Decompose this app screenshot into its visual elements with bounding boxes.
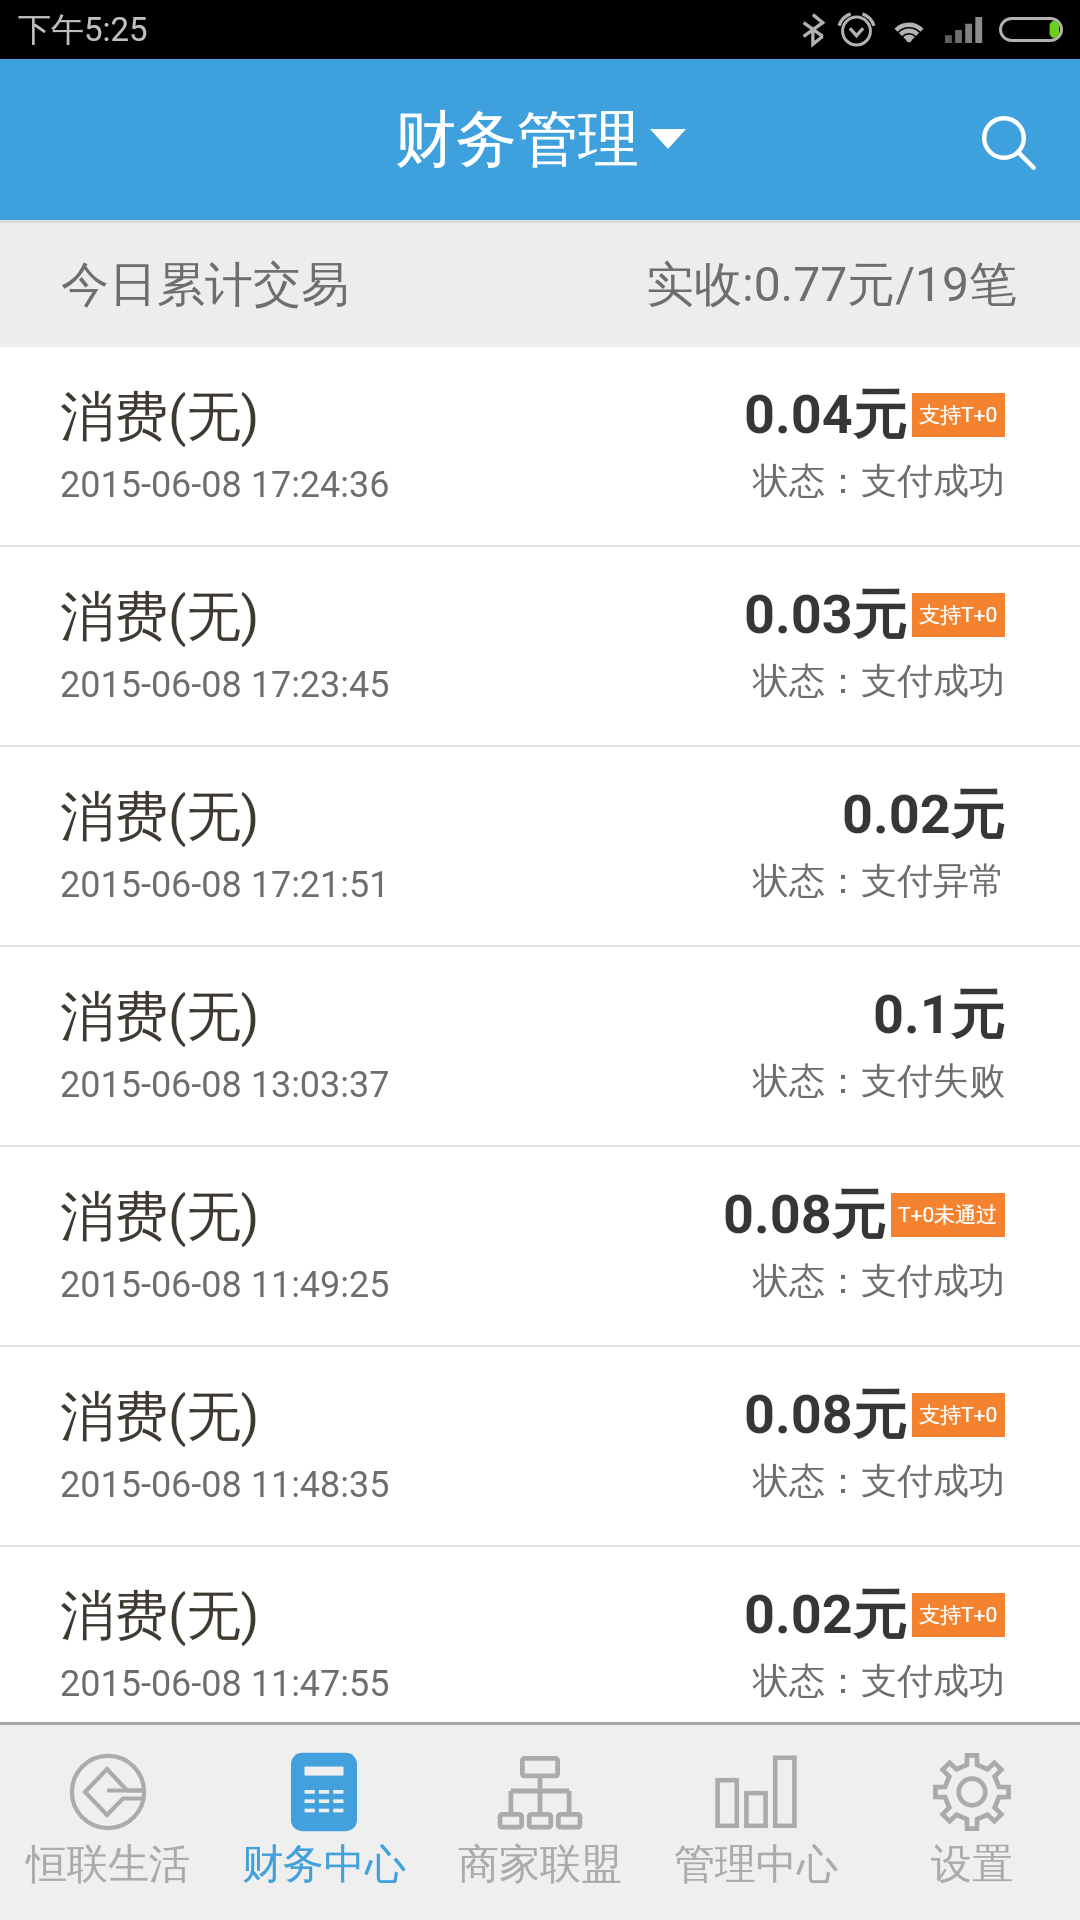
staticText: 0.02元 [842, 781, 1005, 849]
staticText: 财务中心 [242, 1839, 406, 1891]
button[interactable]: 消费(无) [0, 1547, 1080, 1722]
staticText: 消费(无) [60, 1183, 260, 1251]
staticText: 0.03元 [744, 581, 907, 649]
staticText: 消费(无) [60, 383, 260, 451]
button[interactable]: 财务管理 [395, 101, 686, 178]
button[interactable]: 消费(无) [0, 947, 1080, 1145]
button[interactable]: 消费(无) [0, 547, 1080, 745]
staticText: 0.08元 [723, 1181, 886, 1249]
staticText: 今日累计交易 [61, 255, 349, 315]
button[interactable]: 恒联生活 [0, 1725, 216, 1920]
staticText: 0.08元 [744, 1381, 907, 1449]
staticText: 消费(无) [60, 1383, 260, 1451]
button[interactable]: 消费(无) [0, 1147, 1080, 1345]
staticText: 2015-06-08 13:03:37 [60, 1064, 390, 1106]
staticText: 状态：支付失败 [753, 1058, 1005, 1103]
staticText: 2015-06-08 11:47:55 [60, 1663, 390, 1705]
staticText: 2015-06-08 17:24:36 [60, 464, 390, 506]
staticText: 消费(无) [60, 1582, 260, 1650]
staticText: 2015-06-08 17:23:45 [60, 664, 390, 706]
staticText: 支持T+0 [919, 402, 998, 428]
staticText: 状态：支付成功 [753, 1458, 1005, 1503]
staticText: 下午5:25 [18, 9, 148, 51]
staticText: 2015-06-08 17:21:51 [60, 864, 390, 906]
staticText: 商家联盟 [458, 1839, 622, 1891]
button[interactable]: Search [950, 70, 1080, 210]
staticText: 0.02元 [744, 1581, 907, 1649]
staticText: 状态：支付异常 [753, 858, 1005, 903]
button[interactable]: 管理中心 [648, 1725, 864, 1920]
staticText: 财务管理 [395, 101, 639, 178]
staticText: 消费(无) [60, 983, 260, 1051]
button[interactable]: 消费(无) [0, 747, 1080, 945]
staticText: 2015-06-08 11:48:35 [60, 1464, 390, 1506]
staticText: 管理中心 [674, 1839, 838, 1891]
staticText: 实收:0.77元/19笔 [646, 255, 1017, 315]
button[interactable]: 消费(无) [0, 1347, 1080, 1545]
staticText: 状态：支付成功 [753, 658, 1005, 703]
button[interactable]: 财务中心 [216, 1725, 432, 1920]
staticText: 恒联生活 [26, 1839, 190, 1891]
staticText: 状态：支付成功 [753, 1658, 1005, 1703]
staticText: 状态：支付成功 [753, 458, 1005, 503]
staticText: 2015-06-08 11:49:25 [60, 1264, 390, 1306]
staticText: 支持T+0 [919, 1602, 998, 1628]
staticText: 消费(无) [60, 583, 260, 651]
staticText: 设置 [931, 1839, 1013, 1891]
button[interactable]: 消费(无) [0, 347, 1080, 545]
button[interactable]: 设置 [864, 1725, 1080, 1920]
staticText: 支持T+0 [919, 1402, 998, 1428]
staticText: 支持T+0 [919, 602, 998, 628]
staticText: 0.1元 [873, 981, 1005, 1049]
staticText: 状态：支付成功 [753, 1258, 1005, 1303]
staticText: T+0未通过 [898, 1202, 998, 1228]
staticText: 0.04元 [744, 381, 907, 449]
button[interactable]: 商家联盟 [432, 1725, 648, 1920]
staticText: 消费(无) [60, 783, 260, 851]
